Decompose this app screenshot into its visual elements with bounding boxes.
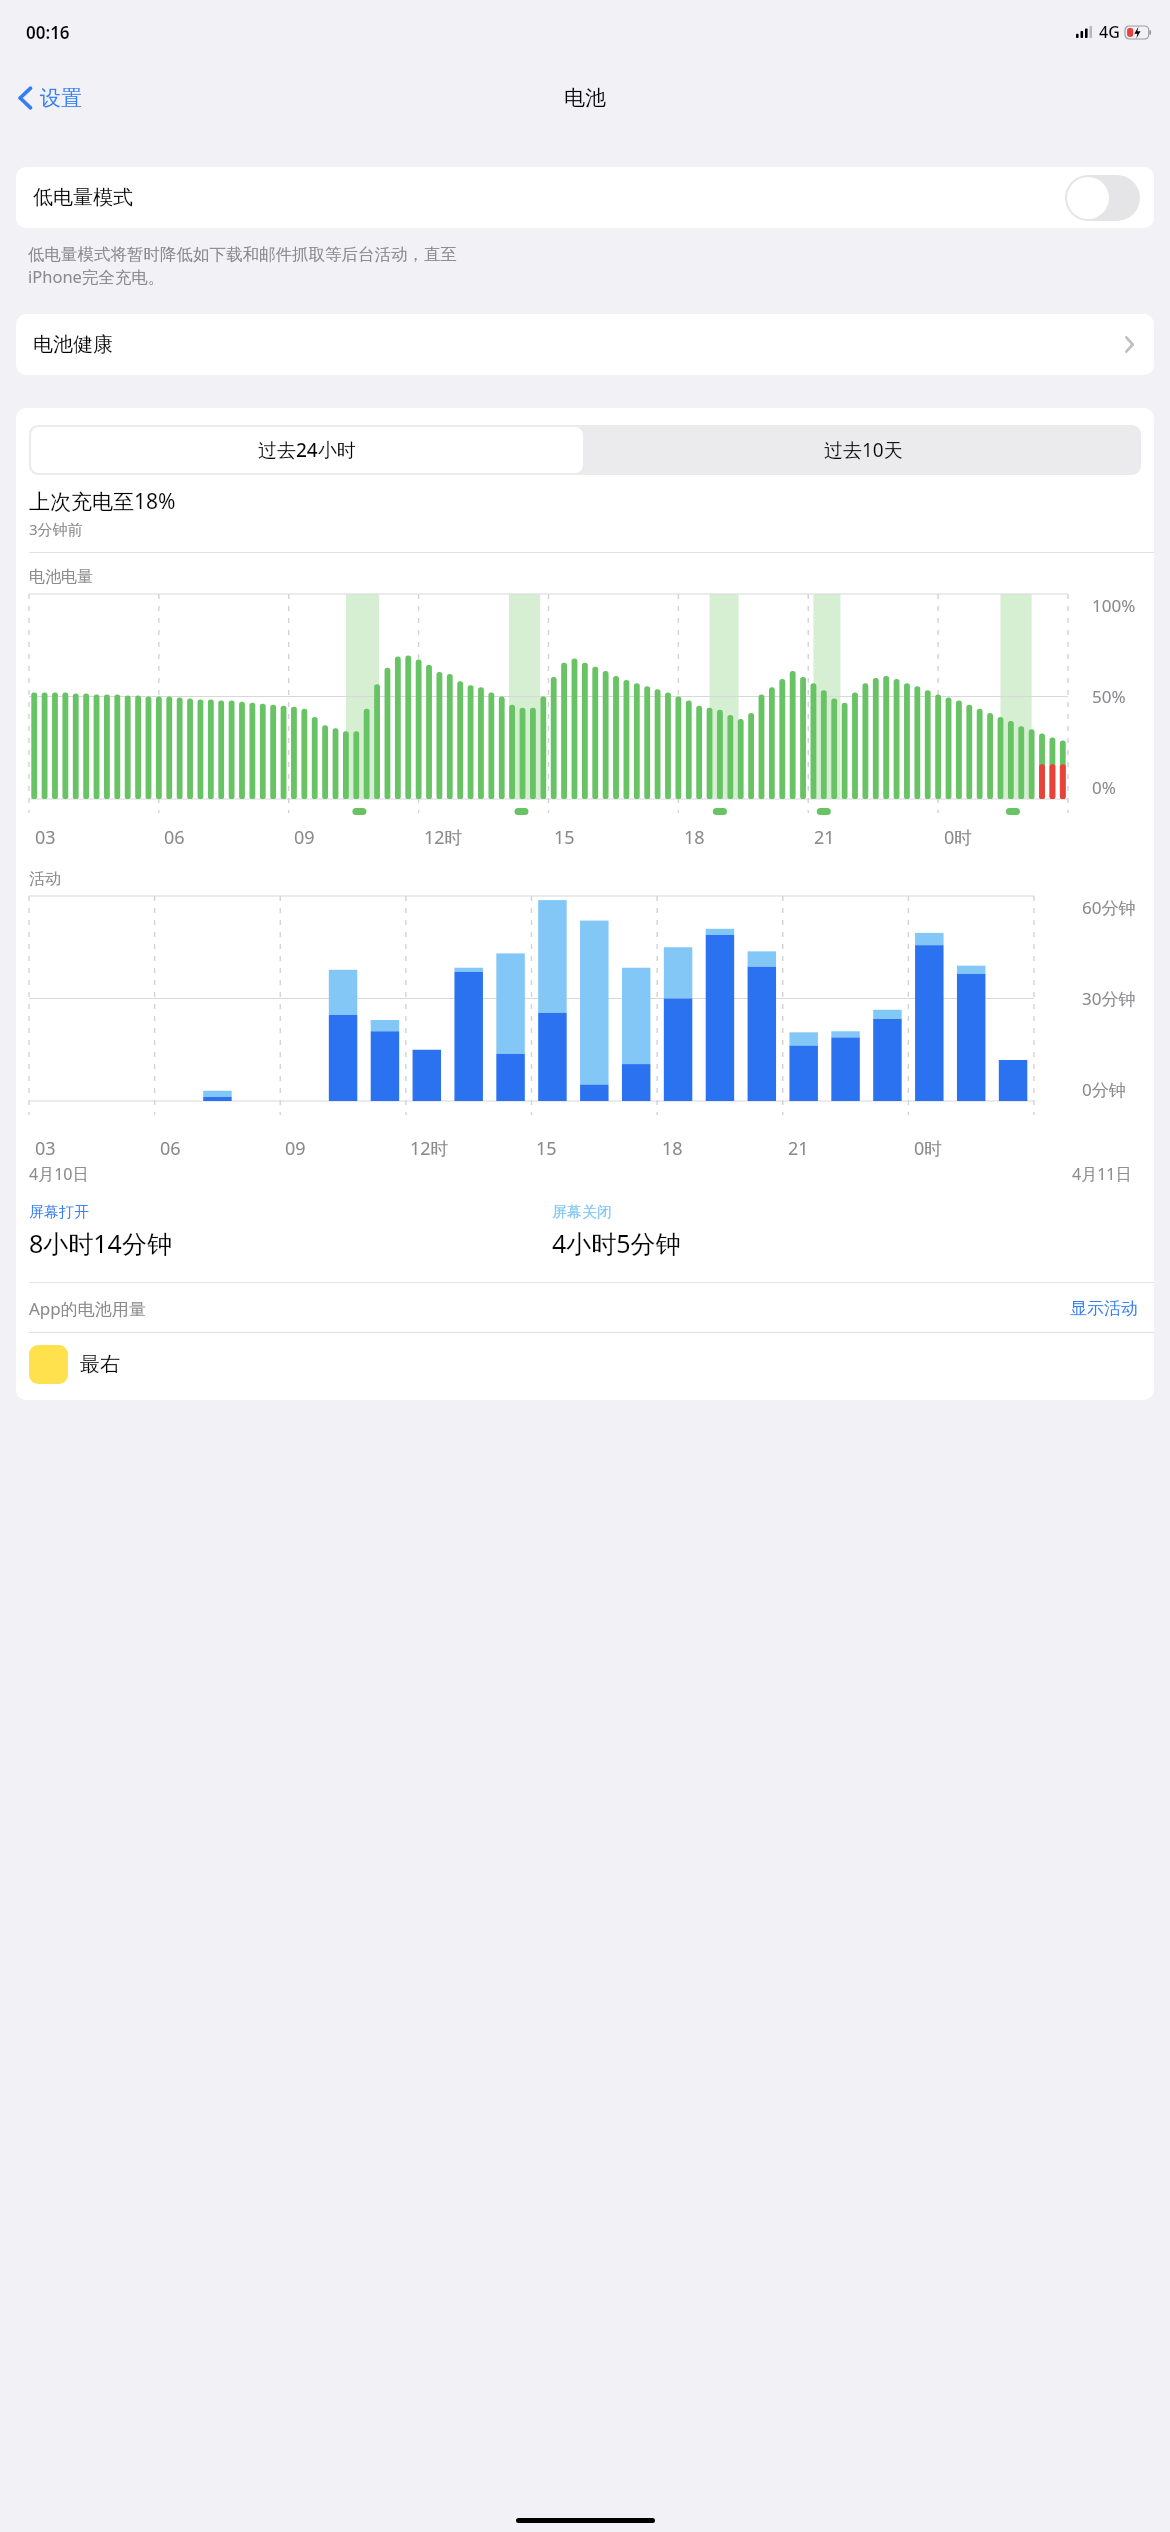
staticText: 4G (1099, 21, 1120, 43)
staticText: 低电量模式将暂时降低如下载和邮件抓取等后台活动，直至 (28, 244, 457, 265)
staticText: 12时 (410, 1136, 449, 1161)
staticText: 屏幕打开 (29, 1203, 89, 1222)
staticText: 4小时5分钟 (552, 1226, 681, 1260)
staticText: 3分钟前 (29, 519, 83, 539)
button[interactable]: 低电量模式 (16, 167, 1154, 228)
button[interactable]: 过去10天 (585, 425, 1141, 475)
staticText: 21 (814, 825, 835, 850)
staticText: 60分钟 (1082, 896, 1136, 919)
button[interactable]: 设置 (0, 79, 94, 117)
staticText: 18 (684, 825, 705, 850)
staticText: 屏幕关闭 (552, 1203, 612, 1222)
staticText: 最右 (80, 1352, 120, 1377)
staticText: iPhone完全充电。 (28, 265, 165, 288)
staticText: 4月10日 (29, 1163, 89, 1185)
staticText: 显示活动 (1070, 1298, 1138, 1319)
staticText: 00:16 (26, 21, 70, 44)
staticText: 18 (662, 1136, 683, 1161)
staticText: 06 (160, 1136, 181, 1161)
staticText: 低电量模式 (33, 185, 133, 210)
staticText: 50% (1092, 685, 1126, 708)
staticText: 21 (788, 1136, 809, 1161)
staticText: 15 (554, 825, 575, 850)
staticText: App的电池用量 (29, 1297, 146, 1320)
staticText: 100% (1092, 594, 1136, 617)
staticText: 过去10天 (824, 437, 903, 463)
button[interactable]: 显示活动 (1070, 1298, 1138, 1319)
staticText: 设置 (40, 85, 82, 111)
staticText: 8小时14分钟 (29, 1226, 172, 1260)
staticText: 4月11日 (1072, 1163, 1132, 1185)
staticText: 30分钟 (1082, 987, 1136, 1010)
staticText: 0时 (944, 825, 973, 850)
staticText: 过去24小时 (258, 437, 356, 463)
staticText: 03 (35, 825, 56, 850)
button[interactable]: 过去24小时 (31, 427, 583, 473)
staticText: 15 (536, 1136, 557, 1161)
staticText: 上次充电至18% (29, 487, 176, 516)
staticText: 0% (1092, 776, 1116, 799)
staticText: 电池电量 (29, 567, 93, 587)
staticText: 0分钟 (1082, 1078, 1126, 1101)
staticText: 03 (35, 1136, 56, 1161)
staticText: 电池 (564, 85, 606, 111)
staticText: 12时 (424, 825, 463, 850)
staticText: 06 (164, 825, 185, 850)
staticText: 电池健康 (33, 332, 113, 357)
staticText: 0时 (914, 1136, 943, 1161)
staticText: 09 (294, 825, 315, 850)
staticText: 09 (285, 1136, 306, 1161)
button[interactable]: 电池健康 (16, 314, 1154, 375)
button[interactable]: 低电量模式开关 (1065, 175, 1140, 221)
staticText: 活动 (29, 869, 61, 889)
